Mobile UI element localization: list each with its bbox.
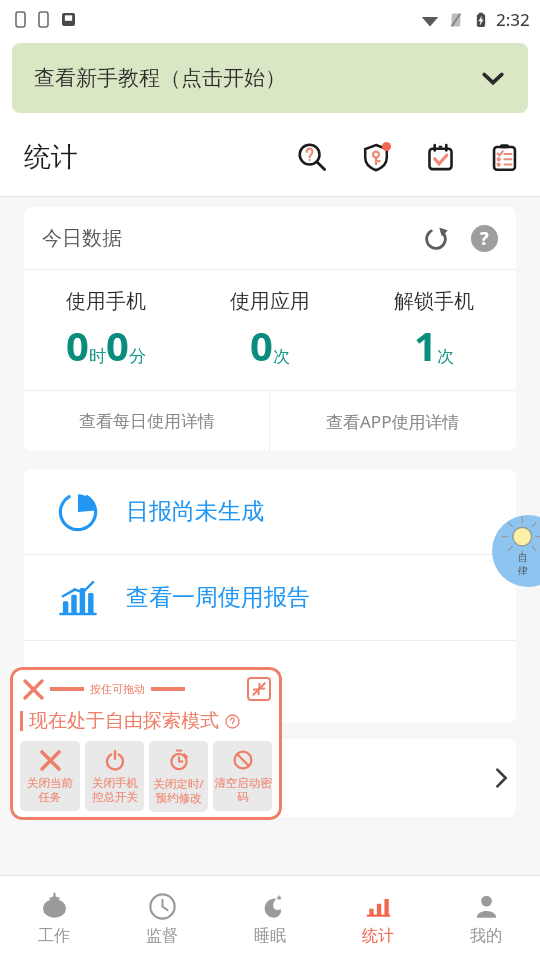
button[interactable]: 监督 [108,876,216,960]
button[interactable]: Security key [354,135,398,179]
button[interactable]: 我的 [432,876,540,960]
button[interactable]: 关闭定时/ 预约修改 [149,741,208,812]
button[interactable]: 日报尚未生成 [24,469,516,554]
staticText: 统计 [362,926,394,946]
staticText: 自 [518,551,528,564]
button[interactable]: 查看新手教程（点击开始） [12,43,528,113]
button[interactable] [24,641,516,723]
staticText: 查看APP使用详情 [326,410,460,433]
button[interactable]: Task list [482,135,526,179]
staticText: 查看新手教程（点击开始） [34,65,286,91]
staticText: 按住可拖动 [90,682,145,696]
staticText: 0 [250,318,273,372]
staticText: 我的 [470,926,502,946]
staticText: 1 [414,318,437,372]
button[interactable]: 清空启动密 码 [213,741,272,811]
button[interactable]: 工作 [0,876,108,960]
button[interactable]: Help [466,220,502,256]
staticText: 次 [273,346,290,367]
staticText: 分 [129,346,146,367]
staticText: 统计 [24,140,78,174]
staticText: 今日数据 [42,226,122,251]
staticText: 次 [437,346,454,367]
staticText: 使用手机 [66,289,146,314]
staticText: 0 [106,318,129,372]
staticText: 日报尚未生成 [126,497,264,526]
staticText: 查看一周使用报告 [126,583,310,612]
staticText: 0 [66,318,89,372]
staticText: 律 [518,564,528,577]
button[interactable]: Calendar check [418,135,462,179]
button[interactable]: 统计 [324,876,432,960]
staticText: 清空启动密 码 [214,776,272,805]
button[interactable]: 关闭手机 控总开关 [85,741,144,811]
button[interactable]: 关闭当前 任务 [20,741,80,811]
button[interactable]: 查看一周使用报告 [24,555,516,640]
staticText: 睡眠 [254,926,286,946]
button[interactable]: 自律 floating shortcut [492,515,540,587]
staticText: 工作 [38,926,70,946]
staticText: 解锁手机 [394,289,474,314]
staticText: 时 [89,346,106,367]
staticText: 关闭手机 控总开关 [92,776,138,805]
staticText: 关闭定时/ 预约修改 [153,776,204,806]
button[interactable]: Help search [290,135,334,179]
button[interactable]: Close [20,676,46,702]
button[interactable] [24,739,516,817]
button[interactable]: Refresh [418,220,454,256]
button[interactable]: 睡眠 [216,876,324,960]
staticText: 查看每日使用详情 [79,411,215,432]
staticText: 2:32 [496,8,530,31]
button[interactable]: Collapse [246,676,272,702]
staticText: 使用应用 [230,289,310,314]
staticText: 现在处于自由探索模式 [29,709,219,733]
button[interactable]: 查看APP使用详情 [270,391,516,451]
staticText: 监督 [146,926,178,946]
staticText: 关闭当前 任务 [27,776,73,805]
button[interactable]: 查看每日使用详情 [24,391,269,451]
staticText: ? [480,226,489,251]
